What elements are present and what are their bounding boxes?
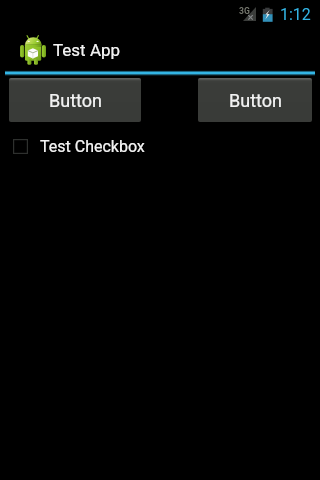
button[interactable]: Test App icon	[14, 26, 121, 72]
other: Mobile signal	[243, 7, 256, 21]
staticText: Button	[49, 90, 102, 111]
button[interactable]: Button	[9, 78, 141, 122]
staticText: Test Checkbox	[40, 137, 145, 156]
staticText: Test App	[53, 40, 121, 60]
staticText: 1:12	[280, 5, 311, 24]
staticText: 3G	[239, 6, 250, 16]
other: Battery charging	[262, 7, 273, 23]
staticText: Button	[229, 90, 282, 111]
button[interactable]: Button	[198, 78, 312, 122]
button[interactable]: Test Checkbox	[9, 132, 145, 160]
other: Test App icon	[20, 34, 46, 65]
